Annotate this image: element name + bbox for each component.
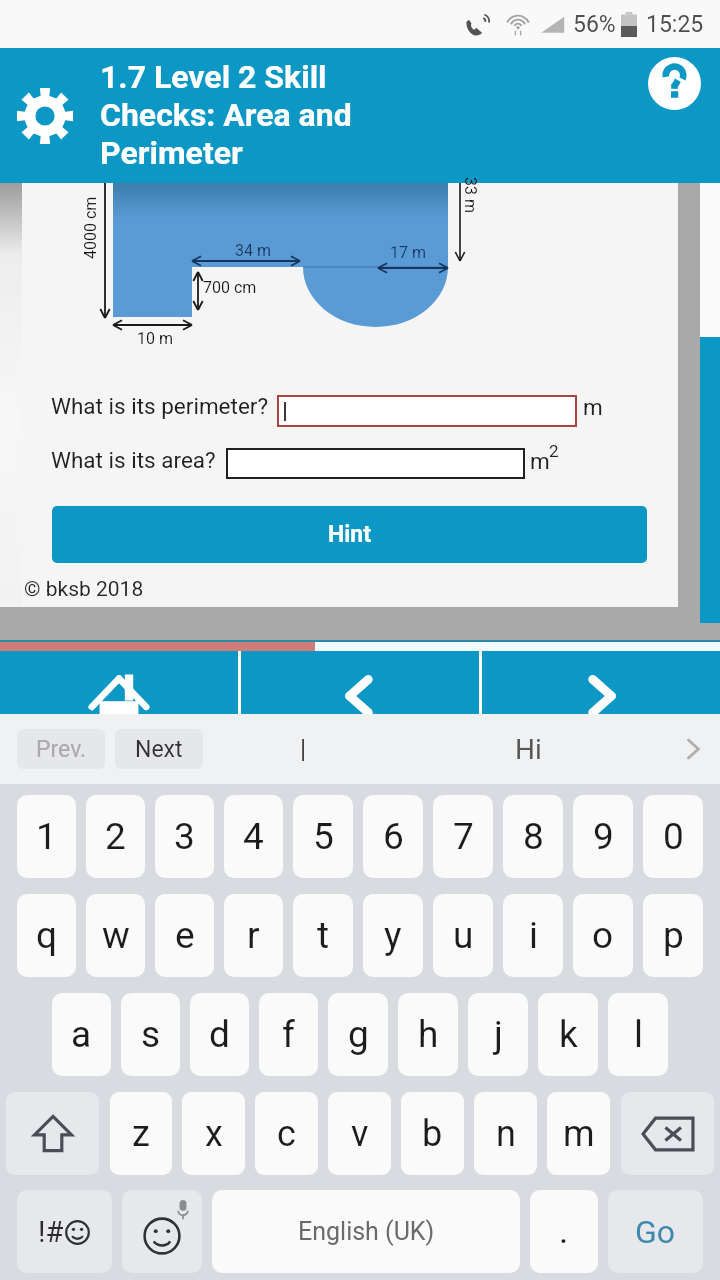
button[interactable]: Settings <box>14 85 76 147</box>
staticText: z <box>132 1113 150 1155</box>
button[interactable]: 1 <box>17 795 76 878</box>
button[interactable]: Shift <box>6 1092 99 1175</box>
staticText: 2 <box>549 441 559 461</box>
staticText: !# <box>38 1215 64 1249</box>
button[interactable]: Symbols <box>17 1190 112 1273</box>
staticText: h <box>418 1013 439 1056</box>
button[interactable]: 2 <box>86 795 145 878</box>
button[interactable]: Hi <box>403 714 653 784</box>
staticText: o <box>592 914 614 957</box>
staticText: 15:25 <box>646 11 704 38</box>
button[interactable]: | <box>203 714 403 784</box>
button[interactable]: n <box>474 1092 537 1175</box>
button[interactable]: Next <box>115 729 203 769</box>
staticText: d <box>209 1013 230 1056</box>
button[interactable]: Go <box>608 1190 703 1273</box>
button[interactable]: u <box>433 894 493 977</box>
staticText: English (UK) <box>298 1217 435 1246</box>
staticText: p <box>663 914 684 957</box>
button[interactable]: Emoji and voice input <box>122 1190 202 1273</box>
staticText: f <box>282 1013 295 1056</box>
staticText: j <box>494 1013 503 1056</box>
staticText: 3 <box>174 815 195 858</box>
button[interactable]: o <box>573 894 633 977</box>
staticText: 34 m <box>235 241 271 260</box>
staticText: 700 cm <box>203 278 257 297</box>
button[interactable]: Next <box>482 651 720 714</box>
button[interactable]: r <box>224 894 283 977</box>
staticText: 1 <box>36 815 57 858</box>
staticText: y <box>384 914 402 957</box>
button[interactable]: d <box>190 993 249 1076</box>
button[interactable]: a <box>52 993 111 1076</box>
staticText: w <box>102 914 130 957</box>
staticText: x <box>205 1113 223 1155</box>
staticText: 17 m <box>390 243 426 262</box>
staticText: 7 <box>453 815 474 858</box>
button[interactable]: g <box>328 993 388 1076</box>
button[interactable]: Backspace <box>621 1092 714 1175</box>
button[interactable]: k <box>538 993 598 1076</box>
button[interactable]: l <box>608 993 668 1076</box>
staticText: v <box>351 1113 369 1155</box>
staticText: s <box>141 1013 161 1056</box>
button[interactable]: w <box>86 894 145 977</box>
button[interactable]: Hint <box>52 506 647 563</box>
staticText: 56% <box>573 11 616 38</box>
button[interactable]: j <box>468 993 528 1076</box>
staticText: 2 <box>105 815 126 858</box>
button[interactable]: Previous <box>241 651 479 714</box>
staticText: What is its area? <box>51 447 216 473</box>
button[interactable]: i <box>503 894 563 977</box>
staticText: . <box>559 1211 569 1252</box>
button[interactable]: 9 <box>573 795 633 878</box>
staticText: 33 m <box>461 177 480 213</box>
staticText: | <box>300 735 307 764</box>
button[interactable]: 5 <box>293 795 353 878</box>
button[interactable]: 7 <box>433 795 493 878</box>
staticText: l <box>634 1013 643 1056</box>
button[interactable]: 6 <box>363 795 423 878</box>
button[interactable]: . <box>530 1190 598 1273</box>
button[interactable]: 4 <box>224 795 283 878</box>
staticText: Hi <box>515 733 542 766</box>
staticText: 8 <box>523 815 544 858</box>
button[interactable]: m <box>547 1092 610 1175</box>
button[interactable]: x <box>182 1092 245 1175</box>
staticText: 9 <box>593 815 614 858</box>
staticText: r <box>247 914 260 957</box>
staticText: q <box>36 914 58 957</box>
button[interactable] <box>226 448 525 479</box>
button[interactable]: 0 <box>643 795 703 878</box>
button[interactable]: Prev. <box>17 729 105 769</box>
button[interactable]: t <box>293 894 353 977</box>
button[interactable] <box>277 395 577 427</box>
staticText: b <box>422 1113 443 1155</box>
staticText: u <box>453 914 474 957</box>
button[interactable]: 3 <box>155 795 214 878</box>
button[interactable]: h <box>398 993 458 1076</box>
button[interactable]: p <box>643 894 703 977</box>
staticText: Next <box>135 736 183 763</box>
button[interactable]: b <box>401 1092 464 1175</box>
staticText: c <box>277 1113 296 1155</box>
staticText: a <box>71 1013 92 1056</box>
staticText: 4 <box>243 815 264 858</box>
button[interactable]: f <box>259 993 318 1076</box>
button[interactable]: z <box>110 1092 172 1175</box>
button[interactable]: More suggestions <box>673 729 713 769</box>
button[interactable]: English (UK) <box>212 1190 520 1273</box>
staticText: Go <box>635 1213 676 1251</box>
button[interactable]: y <box>363 894 423 977</box>
button[interactable]: s <box>121 993 180 1076</box>
button[interactable]: Home <box>0 651 238 714</box>
button[interactable]: q <box>17 894 76 977</box>
staticText: 6 <box>383 815 404 858</box>
button[interactable]: 8 <box>503 795 563 878</box>
button[interactable]: e <box>155 894 214 977</box>
staticText: What is its perimeter? <box>51 393 269 419</box>
staticText: g <box>348 1013 369 1056</box>
button[interactable]: Help <box>648 57 701 110</box>
button[interactable]: v <box>328 1092 391 1175</box>
button[interactable]: c <box>255 1092 318 1175</box>
